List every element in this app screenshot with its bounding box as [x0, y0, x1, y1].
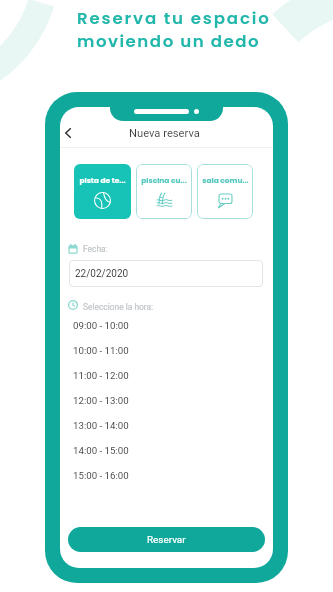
button[interactable]: sala comu... — [197, 164, 253, 219]
button[interactable]: pista de te... — [74, 164, 131, 219]
button[interactable]: 14:00 - 15:00 — [60, 438, 273, 463]
button[interactable]: 13:00 - 14:00 — [60, 413, 273, 438]
staticText: Reservar — [147, 534, 186, 546]
staticText: 10:00 - 11:00 — [73, 345, 129, 356]
button[interactable]: Reservar — [68, 527, 265, 552]
button[interactable]: Back — [60, 123, 80, 143]
staticText: pista de te... — [79, 175, 126, 185]
staticText: 22/02/2020 — [75, 268, 129, 280]
staticText: Seleccione la hora: — [83, 302, 154, 312]
button[interactable]: 15:00 - 16:00 — [60, 463, 273, 488]
staticText: 09:00 - 10:00 — [73, 320, 129, 331]
staticText: 12:00 - 13:00 — [73, 395, 129, 406]
staticText: 14:00 - 15:00 — [73, 445, 129, 456]
button[interactable]: 10:00 - 11:00 — [60, 338, 273, 363]
button[interactable]: 09:00 - 10:00 — [60, 313, 273, 338]
staticText: 15:00 - 16:00 — [73, 470, 129, 481]
staticText: sala comu... — [202, 175, 249, 185]
button[interactable]: 22/02/2020 — [69, 260, 263, 287]
staticText: 11:00 - 12:00 — [73, 370, 129, 381]
staticText: moviendo un dedo — [77, 30, 261, 53]
staticText: 13:00 - 14:00 — [73, 420, 129, 431]
staticText: piscina cu... — [141, 175, 187, 185]
staticText: Nueva reserva — [129, 127, 200, 140]
staticText: Fecha: — [83, 244, 108, 254]
staticText: Reserva tu espacio — [77, 7, 271, 30]
button[interactable]: 12:00 - 13:00 — [60, 388, 273, 413]
button[interactable]: 11:00 - 12:00 — [60, 363, 273, 388]
button[interactable]: piscina cu... — [136, 164, 192, 219]
